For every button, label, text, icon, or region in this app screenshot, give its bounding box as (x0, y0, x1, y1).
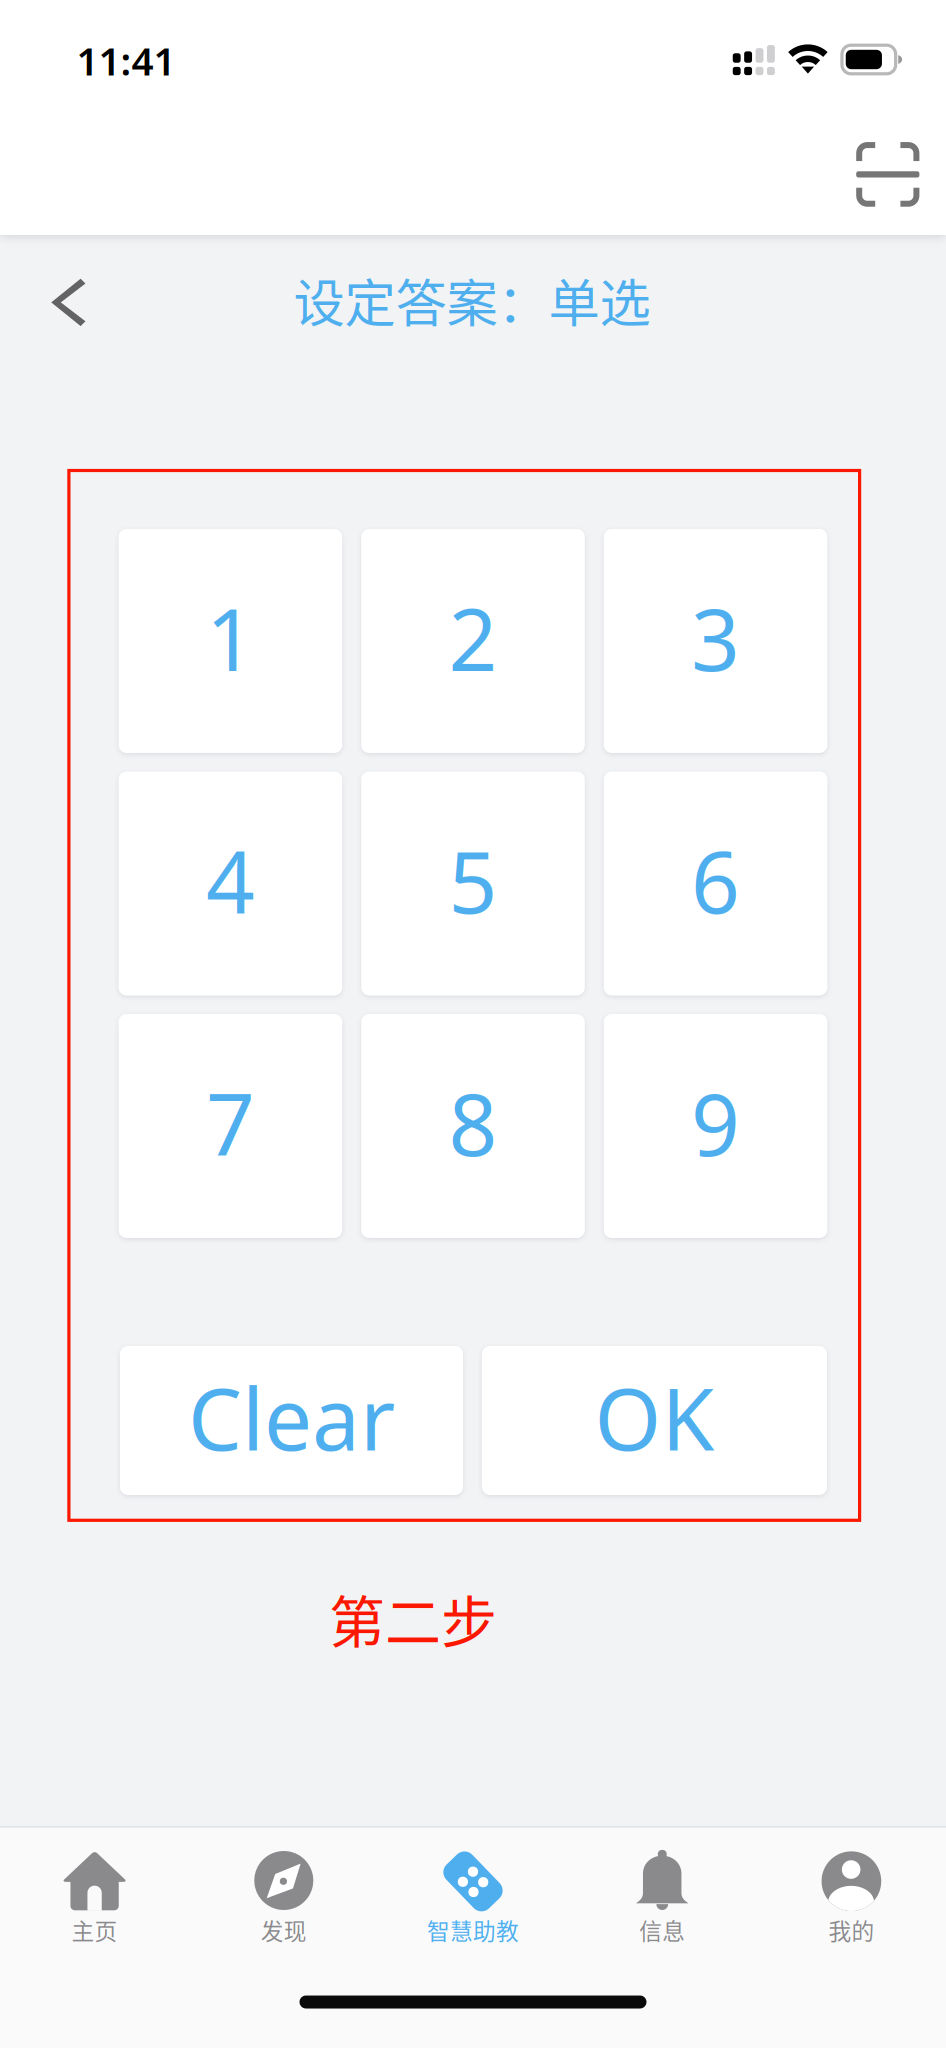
staticText: 4 (206, 824, 255, 937)
button[interactable]: 9 (604, 1014, 827, 1238)
staticText: 发现 (261, 1913, 307, 1946)
button[interactable]: 6 (604, 771, 827, 995)
staticText: Clear (188, 1361, 395, 1474)
button[interactable]: 7 (119, 1014, 342, 1238)
staticText: 3 (691, 581, 740, 695)
button[interactable]: Scan (840, 126, 935, 223)
staticText: 信息 (639, 1913, 685, 1946)
button[interactable]: 我的 (757, 1851, 946, 1963)
staticText: 主页 (72, 1913, 118, 1946)
staticText: 6 (691, 824, 740, 937)
button[interactable]: 发现 (189, 1851, 378, 1963)
staticText: OK (594, 1361, 714, 1474)
button[interactable]: Clear (120, 1346, 463, 1495)
staticText: 1 (206, 581, 255, 695)
staticText: 设定答案：单选 (293, 262, 650, 337)
button[interactable]: 3 (604, 529, 827, 753)
button[interactable]: 主页 (0, 1851, 189, 1963)
staticText: 11:41 (76, 35, 175, 86)
button[interactable]: 智慧助教 (378, 1851, 568, 1963)
button[interactable]: 1 (119, 529, 342, 753)
button[interactable]: 信息 (568, 1851, 757, 1963)
staticText: 智慧助教 (427, 1913, 519, 1946)
staticText: 第二步 (329, 1577, 497, 1659)
button[interactable]: Back (30, 253, 109, 353)
staticText: 9 (691, 1066, 740, 1180)
button[interactable]: 2 (361, 529, 585, 753)
button[interactable]: 5 (361, 771, 585, 995)
staticText: 5 (448, 824, 497, 937)
staticText: 我的 (828, 1913, 874, 1946)
staticText: 2 (448, 581, 497, 695)
staticText: 8 (448, 1066, 497, 1180)
staticText: 7 (206, 1066, 255, 1180)
button[interactable]: 4 (119, 771, 342, 995)
button[interactable]: OK (482, 1346, 827, 1495)
button[interactable]: 8 (361, 1014, 585, 1238)
